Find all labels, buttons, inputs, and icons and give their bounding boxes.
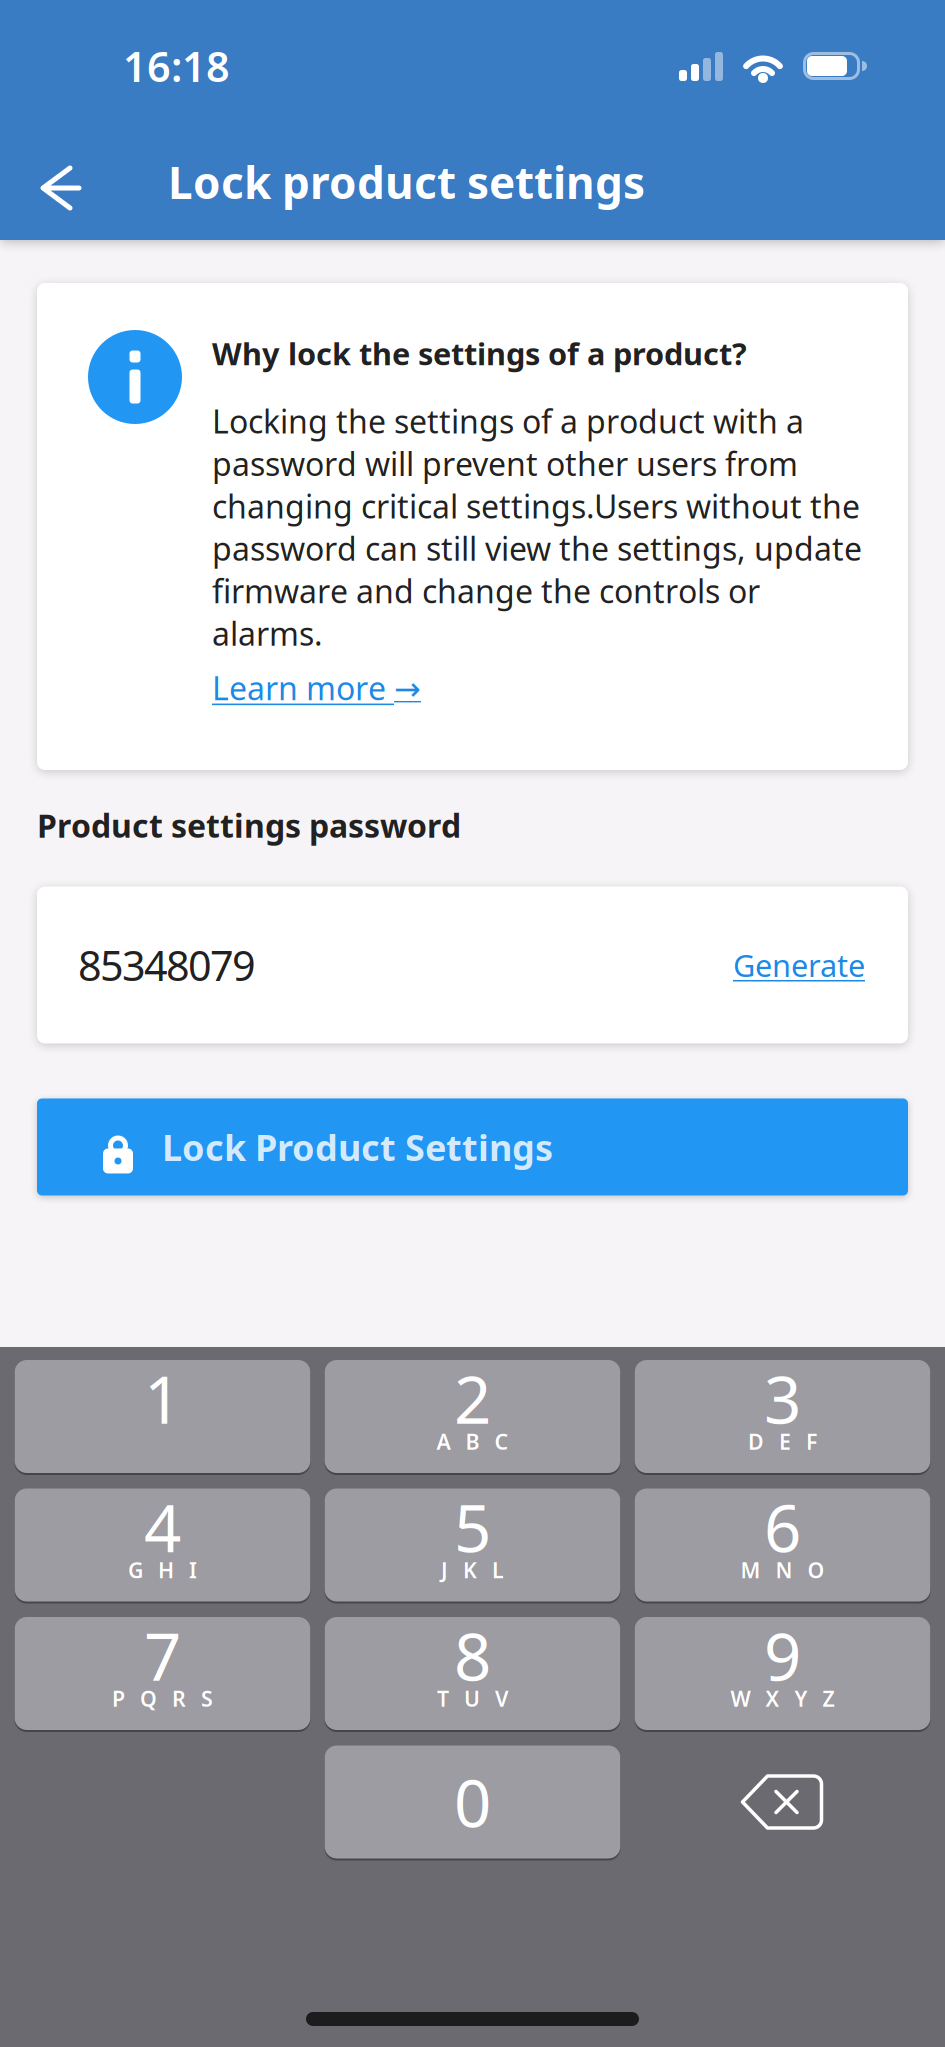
staticText: 16:18 <box>123 39 230 93</box>
button[interactable]: 6 <box>635 1488 930 1601</box>
staticText: Generate <box>733 945 865 985</box>
button[interactable]: 0 <box>325 1745 620 1858</box>
staticText: Lock product settings <box>168 153 645 211</box>
staticText: 5 <box>454 1484 491 1570</box>
staticText: Product settings password <box>37 804 461 846</box>
staticText: Learn more → <box>212 667 421 709</box>
button[interactable]: 9 <box>635 1617 930 1730</box>
button[interactable]: Learn more → <box>212 667 421 709</box>
staticText: 0 <box>454 1759 491 1845</box>
staticText: W X Y Z <box>730 1684 834 1713</box>
staticText: 3 <box>764 1355 801 1442</box>
staticText: J K L <box>441 1556 504 1584</box>
button[interactable]: 3 <box>635 1360 930 1473</box>
button[interactable]: 8 <box>325 1617 620 1730</box>
button[interactable]: Lock Product Settings <box>37 1098 908 1195</box>
button[interactable] <box>635 1745 930 1858</box>
button[interactable]: 1 <box>15 1360 310 1473</box>
button[interactable]: 5 <box>325 1488 620 1601</box>
staticText: 4 <box>144 1484 181 1570</box>
staticText: T U V <box>437 1684 508 1713</box>
button[interactable]: 7 <box>15 1617 310 1730</box>
button[interactable]: Generate <box>733 945 865 985</box>
staticText: A B C <box>436 1427 508 1456</box>
button[interactable]: 4 <box>15 1488 310 1601</box>
staticText: G H I <box>128 1556 197 1584</box>
staticText: P Q R S <box>112 1684 213 1713</box>
staticText: 9 <box>764 1612 801 1699</box>
button[interactable] <box>40 158 82 218</box>
staticText: Lock Product Settings <box>162 1123 553 1171</box>
staticText: 2 <box>454 1355 491 1442</box>
staticText: 8 <box>454 1612 491 1699</box>
staticText: 85348079 <box>78 938 256 992</box>
staticText: Why lock the settings of a product? <box>212 333 747 374</box>
staticText: D E F <box>748 1427 817 1456</box>
button[interactable]: 2 <box>325 1360 620 1473</box>
staticText: 7 <box>144 1612 181 1699</box>
staticText: M N O <box>740 1556 824 1584</box>
staticText: 1 <box>144 1355 181 1442</box>
staticText: Locking the settings of a product with a… <box>212 400 862 655</box>
staticText: 6 <box>764 1484 801 1570</box>
